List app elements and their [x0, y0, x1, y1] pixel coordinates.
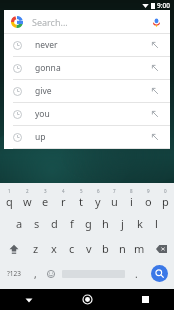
staticText: never: [35, 39, 58, 51]
button[interactable]: v: [80, 236, 97, 261]
staticText: a: [16, 216, 23, 231]
button[interactable]: Insert gonna: [149, 62, 161, 74]
button[interactable]: z: [27, 236, 45, 261]
button[interactable]: f: [63, 211, 80, 236]
staticText: 8: [130, 188, 133, 194]
staticText: 7: [113, 188, 116, 194]
button[interactable]: x: [45, 236, 63, 261]
staticText: 2: [26, 188, 29, 194]
staticText: y: [95, 194, 101, 209]
staticText: Search...: [32, 16, 68, 28]
button[interactable]: n: [114, 236, 131, 261]
button[interactable]: 1: [0, 186, 18, 211]
staticText: ,: [34, 267, 37, 281]
staticText: t: [79, 194, 83, 209]
staticText: .: [135, 267, 138, 281]
button[interactable]: j: [114, 211, 131, 236]
staticText: s: [34, 216, 40, 231]
button[interactable]: 5: [72, 186, 89, 211]
button[interactable]: Insert never: [149, 39, 161, 51]
button[interactable]: .: [128, 261, 144, 286]
staticText: i: [130, 194, 133, 209]
button[interactable]: m: [131, 236, 148, 261]
button[interactable]: never: [4, 34, 170, 56]
button[interactable]: up: [4, 126, 170, 148]
button[interactable]: Insert give: [149, 85, 161, 97]
button[interactable]: Backspace: [148, 236, 174, 261]
button[interactable]: d: [46, 211, 63, 236]
staticText: 0: [164, 188, 167, 194]
staticText: h: [102, 216, 109, 231]
button[interactable]: gonna: [4, 57, 170, 79]
staticText: v: [86, 241, 92, 256]
button[interactable]: 7: [106, 186, 123, 211]
staticText: k: [137, 216, 143, 231]
staticText: g: [85, 216, 92, 231]
staticText: e: [42, 194, 49, 209]
button[interactable]: Space: [59, 261, 128, 286]
button[interactable]: b: [97, 236, 114, 261]
button[interactable]: Shift: [0, 236, 27, 261]
staticText: 9: [147, 188, 150, 194]
button[interactable]: k: [131, 211, 148, 236]
button[interactable]: a: [10, 211, 28, 236]
staticText: 4: [62, 188, 65, 194]
button[interactable]: g: [80, 211, 97, 236]
button[interactable]: give: [4, 80, 170, 102]
button[interactable]: Insert up: [149, 131, 161, 143]
staticText: gonna: [35, 62, 61, 74]
button[interactable]: 0: [157, 186, 174, 211]
button[interactable]: 6: [89, 186, 106, 211]
staticText: n: [119, 241, 126, 256]
staticText: w: [23, 194, 32, 209]
button[interactable]: 3: [36, 186, 54, 211]
staticText: q: [6, 194, 13, 209]
button[interactable]: you: [4, 103, 170, 125]
staticText: c: [69, 241, 75, 256]
staticText: r: [61, 194, 66, 209]
staticText: f: [70, 216, 74, 231]
staticText: you: [35, 108, 50, 120]
staticText: 1: [8, 188, 11, 194]
staticText: o: [145, 194, 152, 209]
button[interactable]: Home: [58, 289, 116, 310]
button[interactable]: c: [63, 236, 80, 261]
button[interactable]: l: [148, 211, 165, 236]
staticText: ?123: [7, 269, 21, 278]
button[interactable]: Back: [0, 289, 58, 310]
button[interactable]: s: [28, 211, 46, 236]
staticText: u: [111, 194, 118, 209]
staticText: 3: [44, 188, 47, 194]
button[interactable]: Recents: [116, 289, 174, 310]
button[interactable]: 9: [140, 186, 157, 211]
staticText: b: [102, 241, 109, 256]
button[interactable]: ,: [27, 261, 43, 286]
staticText: 5: [80, 188, 83, 194]
staticText: 9:00: [157, 1, 170, 10]
button[interactable]: 4: [54, 186, 72, 211]
staticText: z: [33, 241, 39, 256]
staticText: d: [51, 216, 58, 231]
staticText: j: [121, 216, 124, 231]
staticText: give: [35, 85, 52, 97]
staticText: x: [51, 241, 57, 256]
staticText: m: [134, 241, 145, 256]
button[interactable]: ?123: [0, 261, 27, 286]
button[interactable]: Search...: [4, 10, 170, 33]
button[interactable]: Emoji: [43, 261, 59, 286]
staticText: 6: [97, 188, 100, 194]
button[interactable]: 8: [123, 186, 140, 211]
staticText: l: [155, 216, 158, 231]
button[interactable]: Search: [144, 261, 174, 286]
staticText: p: [162, 194, 169, 209]
button[interactable]: Voice search: [149, 15, 163, 29]
button[interactable]: Insert you: [149, 108, 161, 120]
staticText: up: [35, 131, 46, 143]
button[interactable]: 2: [18, 186, 36, 211]
button[interactable]: h: [97, 211, 114, 236]
